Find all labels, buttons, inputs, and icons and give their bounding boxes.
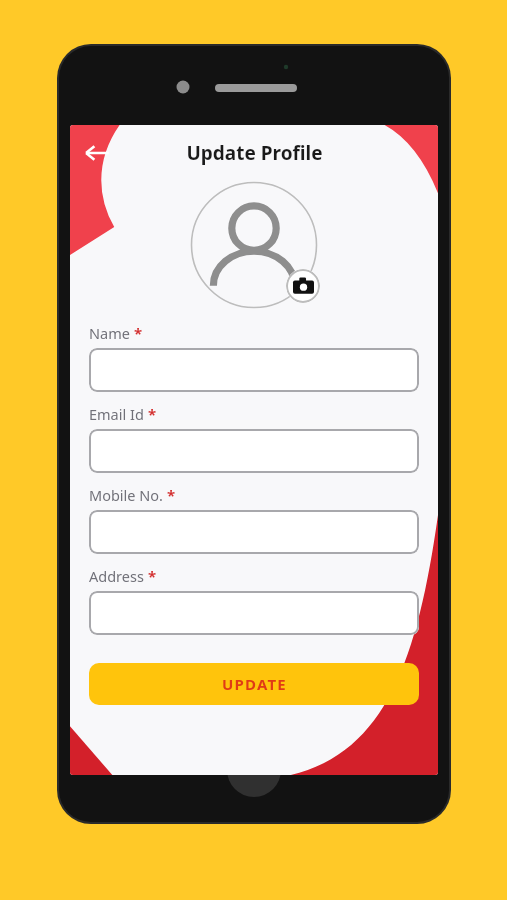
button[interactable]: Back	[74, 130, 120, 176]
button[interactable]: Mobile No.	[89, 510, 419, 554]
button[interactable]: Take photo	[286, 269, 320, 303]
button[interactable]: Change profile photo	[190, 181, 318, 309]
staticText: Name	[89, 323, 130, 343]
staticText: *	[167, 485, 176, 505]
staticText: Email Id	[89, 404, 144, 424]
staticText: Mobile No.	[89, 485, 163, 505]
staticText: *	[148, 404, 157, 424]
staticText: Update Profile	[186, 140, 323, 166]
button[interactable]: Name	[89, 348, 419, 392]
button[interactable]: UPDATE	[89, 663, 419, 705]
staticText: *	[148, 566, 157, 586]
staticText: UPDATE	[222, 674, 287, 694]
staticText: Address	[89, 566, 144, 586]
staticText: *	[134, 323, 143, 343]
button[interactable]: Address	[89, 591, 419, 635]
button[interactable]: Email Id	[89, 429, 419, 473]
